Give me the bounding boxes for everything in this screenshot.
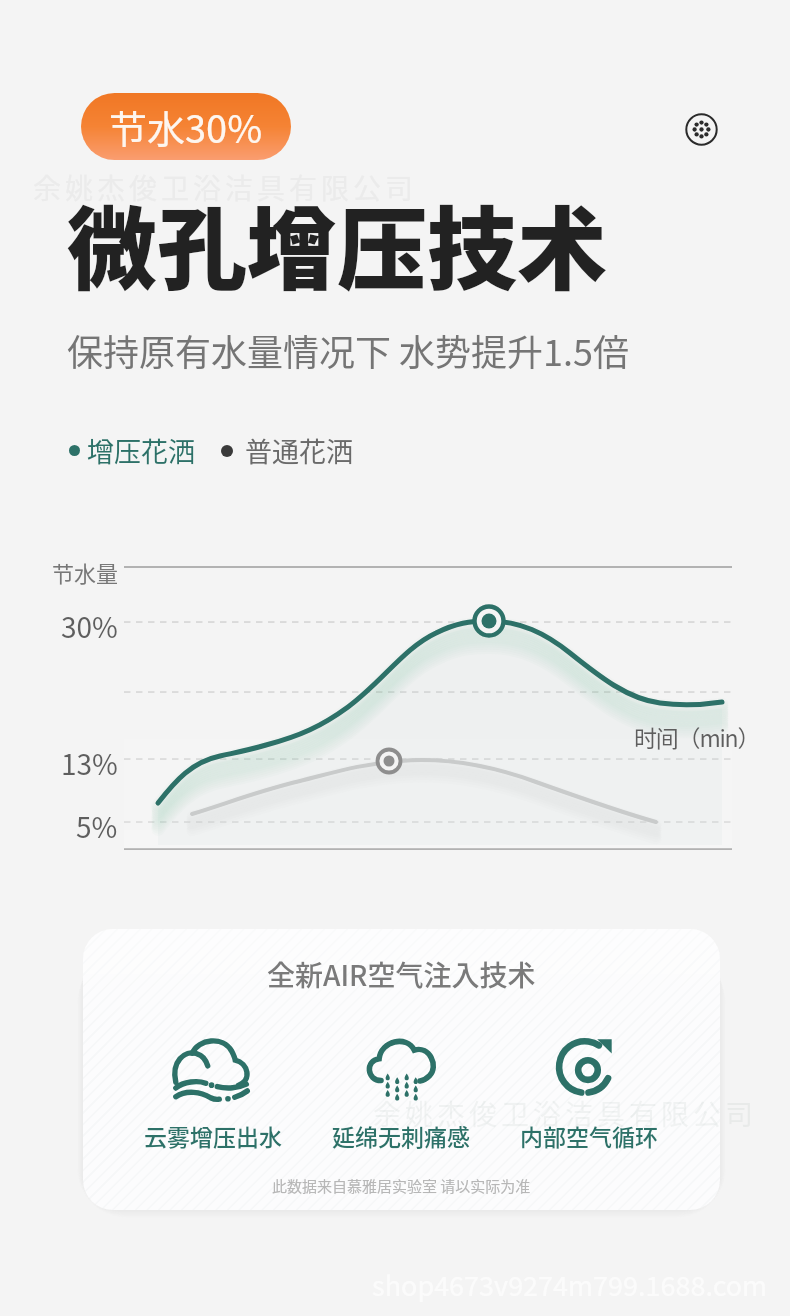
staticText: 余姚杰俊卫浴洁具有限公司 <box>373 1093 758 1134</box>
staticText: 云雾增压出水 <box>144 1119 282 1152</box>
staticText: 30% <box>61 606 118 647</box>
staticText: 延绵无刺痛感 <box>332 1119 470 1152</box>
staticText: 微孔增压技术 <box>67 178 607 308</box>
button[interactable]: 云雾增压出水 <box>126 1034 300 1152</box>
staticText: 余姚杰俊卫浴洁具有限公司 <box>33 167 418 208</box>
button[interactable]: Shower head spray <box>679 107 724 152</box>
staticText: 增压花洒 <box>87 431 195 470</box>
staticText: 保持原有水量情况下 水势提升1.5倍 <box>67 324 630 376</box>
staticText: 此数据来自慕雅居实验室 请以实际为准 <box>272 1175 531 1197</box>
staticText: 5% <box>76 806 118 847</box>
staticText: 全新AIR空气注入技术 <box>267 954 536 995</box>
button[interactable]: 全新AIR空气注入技术 <box>83 929 720 1210</box>
staticText: 时间（min） <box>634 720 760 753</box>
button[interactable]: 增压花洒 <box>69 431 353 470</box>
button[interactable]: 延绵无刺痛感 <box>314 1034 488 1152</box>
staticText: 内部空气循环 <box>520 1119 658 1152</box>
button[interactable]: 内部空气循环 <box>502 1034 676 1152</box>
staticText: 节水量 <box>52 556 119 588</box>
button[interactable]: 节水30% <box>81 93 291 160</box>
staticText: 节水30% <box>109 99 263 154</box>
staticText: 普通花洒 <box>245 431 353 470</box>
staticText: 13% <box>61 743 118 784</box>
